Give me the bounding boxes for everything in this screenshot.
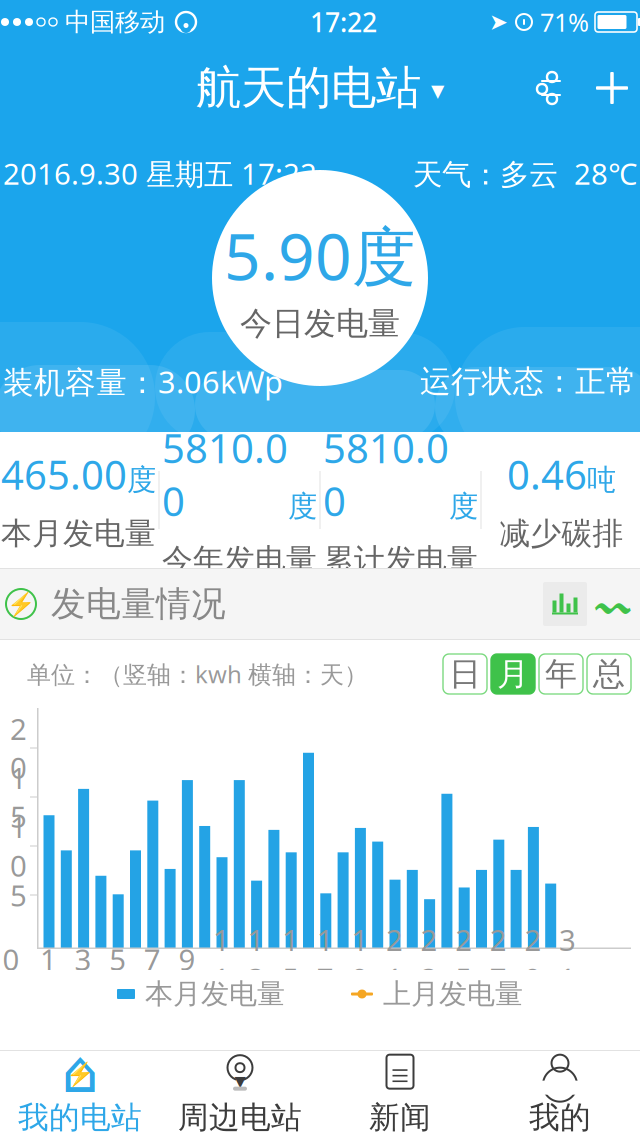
- button[interactable]: 总: [587, 654, 631, 694]
- staticText: 本月发电量: [145, 977, 285, 1011]
- staticText: 9: [178, 939, 195, 978]
- staticText: 7: [144, 939, 161, 978]
- staticText: 20: [10, 709, 27, 787]
- staticText: 〰: [595, 579, 630, 628]
- button[interactable]: ▾: [160, 1050, 320, 1136]
- staticText: 累计发电量: [323, 541, 478, 579]
- staticText: [546, 939, 554, 978]
- button[interactable]: 航天的电站: [186, 54, 454, 122]
- button[interactable]: 月: [491, 654, 535, 694]
- button[interactable]: 折线图: [591, 582, 635, 626]
- staticText: 新闻: [369, 1099, 431, 1136]
- staticText: 吨: [587, 462, 616, 498]
- staticText: 13: [248, 920, 265, 998]
- button[interactable]: 日: [443, 654, 487, 694]
- staticText: 发电量情况: [51, 583, 226, 625]
- staticText: 17: [317, 920, 334, 998]
- staticText: 今年发电量: [162, 541, 317, 579]
- staticText: [408, 939, 416, 978]
- staticText: 单位：（竖轴：kwh 横轴：天）: [27, 658, 368, 690]
- staticText: 度: [288, 488, 317, 524]
- staticText: [235, 939, 243, 978]
- staticText: 71%: [540, 5, 589, 39]
- button[interactable]: 柱状图: [543, 582, 587, 626]
- staticText: 465.00: [1, 448, 127, 501]
- staticText: 17:22: [310, 4, 377, 40]
- staticText: 2016.9.30 星期五 17:22: [3, 154, 317, 193]
- button[interactable]: 5810.00: [320, 448, 480, 552]
- staticText: 5810.00: [323, 421, 449, 527]
- staticText: 29: [524, 920, 541, 998]
- button[interactable]: 分享: [529, 65, 575, 111]
- staticText: 15: [10, 758, 27, 836]
- staticText: 月: [497, 654, 529, 694]
- staticText: 年: [545, 654, 577, 694]
- staticText: 21: [386, 920, 403, 998]
- staticText: [269, 939, 277, 978]
- staticText: 我的: [529, 1099, 591, 1136]
- staticText: [200, 939, 208, 978]
- staticText: 23: [421, 920, 438, 998]
- staticText: 度: [449, 488, 478, 524]
- staticText: 今日发电量: [240, 304, 400, 343]
- staticText: 本月发电量: [1, 515, 156, 552]
- staticText: [62, 939, 70, 978]
- staticText: ▾: [431, 75, 444, 105]
- staticText: 31: [559, 920, 576, 998]
- button[interactable]: 新闻: [320, 1050, 480, 1136]
- staticText: 5: [109, 939, 126, 978]
- staticText: [131, 939, 139, 978]
- staticText: ➤: [489, 9, 508, 35]
- staticText: ▾: [234, 1068, 245, 1093]
- button[interactable]: 年: [539, 654, 583, 694]
- staticText: 25: [455, 920, 472, 998]
- staticText: 0.46: [507, 448, 587, 501]
- button[interactable]: 5.90度: [212, 170, 428, 386]
- staticText: 减少碳排: [499, 515, 623, 552]
- staticText: 5.90度: [224, 213, 416, 298]
- button[interactable]: 465.00: [0, 448, 158, 552]
- staticText: ⚡: [7, 591, 35, 617]
- staticText: 上月发电量: [383, 977, 523, 1011]
- staticText: ⌂: [61, 1038, 98, 1105]
- staticText: 27: [490, 920, 507, 998]
- staticText: 11: [213, 920, 230, 998]
- staticText: 5: [10, 875, 27, 914]
- staticText: 度: [127, 462, 156, 498]
- staticText: [304, 939, 312, 978]
- staticText: [96, 939, 104, 978]
- staticText: 周边电站: [178, 1099, 302, 1136]
- button[interactable]: ⌂: [0, 1050, 160, 1136]
- staticText: [477, 939, 485, 978]
- staticText: [373, 939, 381, 978]
- staticText: 15: [282, 920, 299, 998]
- staticText: 运行状态：正常: [420, 363, 637, 400]
- staticText: [512, 939, 520, 978]
- staticText: 0: [2, 939, 19, 978]
- button[interactable]: 我的: [480, 1050, 640, 1136]
- staticText: 中国移动: [65, 6, 165, 37]
- staticText: [339, 939, 347, 978]
- staticText: [166, 939, 174, 978]
- staticText: 10: [10, 807, 27, 885]
- staticText: 装机容量：3.06kWp: [3, 361, 283, 402]
- staticText: [442, 939, 450, 978]
- staticText: 日: [449, 654, 481, 694]
- staticText: 天气：多云 28℃: [413, 154, 637, 193]
- staticText: 总: [593, 654, 625, 694]
- staticText: 1: [40, 939, 57, 978]
- staticText: 我的电站: [18, 1099, 142, 1136]
- button[interactable]: 添加电站: [589, 65, 635, 111]
- button[interactable]: 0.46: [481, 448, 640, 552]
- button[interactable]: 5810.00: [159, 448, 319, 552]
- staticText: ⚡: [66, 1062, 94, 1088]
- staticText: 5810.00: [162, 421, 288, 527]
- staticText: 航天的电站: [196, 60, 421, 116]
- staticText: 3: [75, 939, 92, 978]
- staticText: 19: [351, 920, 368, 998]
